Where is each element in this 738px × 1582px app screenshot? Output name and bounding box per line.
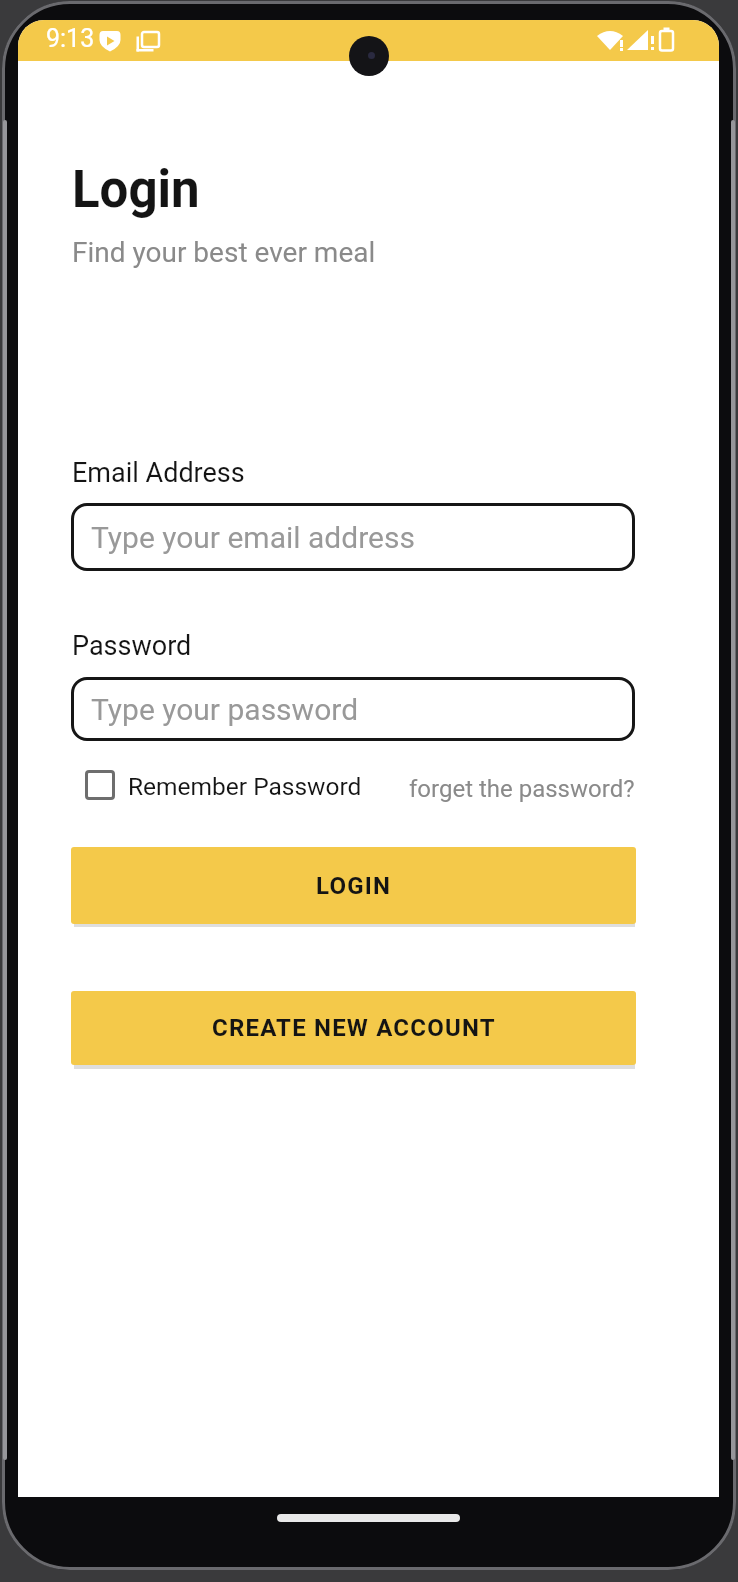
staticText: Type your email address — [91, 520, 415, 555]
staticText: Find your best ever meal — [72, 236, 376, 269]
staticText: Email Address — [72, 457, 245, 489]
staticText: LOGIN — [316, 872, 392, 900]
button[interactable]: Type your email address — [71, 503, 635, 571]
button[interactable] — [85, 770, 115, 800]
staticText: CREATE NEW ACCOUNT — [212, 1014, 496, 1042]
button[interactable]: LOGIN — [71, 847, 636, 924]
staticText: Password — [72, 630, 192, 662]
button[interactable]: Type your password — [71, 677, 635, 741]
staticText: 9:13 — [46, 24, 95, 53]
button[interactable]: CREATE NEW ACCOUNT — [71, 991, 636, 1065]
button[interactable]: forget the password? — [409, 775, 635, 803]
staticText: Login — [72, 160, 200, 220]
staticText: Remember Password — [128, 772, 362, 801]
staticText: Type your password — [91, 692, 359, 727]
